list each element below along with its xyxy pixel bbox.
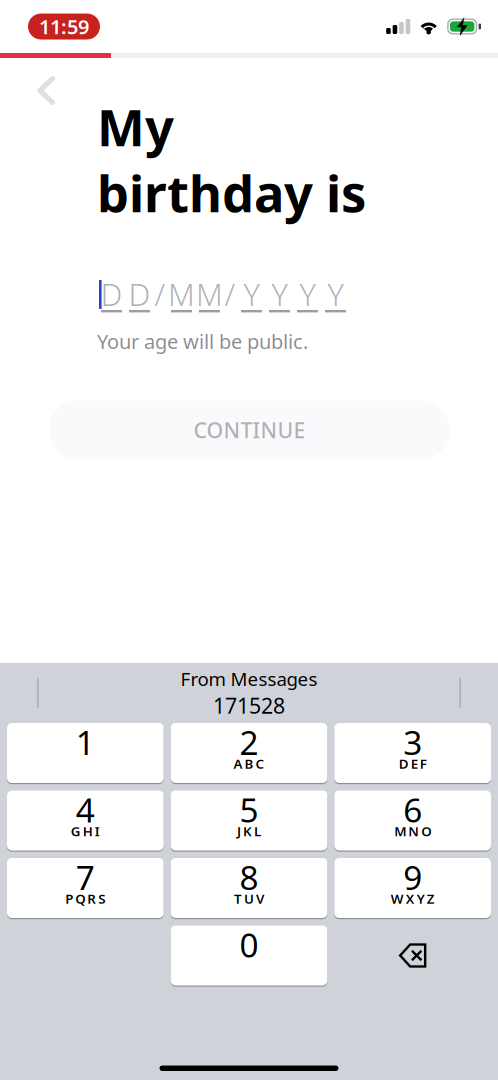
staticText: 6: [403, 787, 422, 832]
staticText: 171528: [213, 691, 285, 719]
staticText: W X Y Z: [391, 890, 435, 907]
staticText: My: [97, 93, 174, 160]
staticText: birthday is: [97, 159, 366, 226]
button[interactable]: 4: [7, 790, 164, 850]
button[interactable]: 0: [171, 925, 327, 985]
button[interactable]: 3: [334, 723, 491, 783]
button[interactable]: From Messages: [164, 662, 333, 723]
staticText: 9: [403, 855, 422, 899]
staticText: 4: [76, 787, 95, 832]
button[interactable]: 2: [171, 723, 327, 783]
staticText: Y: [243, 274, 259, 314]
staticText: /: [154, 274, 165, 314]
staticText: 5: [239, 787, 258, 832]
staticText: T U V: [234, 890, 264, 907]
button[interactable]: 9: [334, 858, 491, 918]
staticText: 7: [76, 855, 95, 899]
staticText: G H I: [71, 822, 100, 840]
staticText: M: [168, 274, 195, 314]
staticText: From Messages: [180, 666, 317, 691]
button[interactable]: 6: [334, 790, 491, 850]
staticText: 3: [403, 720, 422, 764]
staticText: 1: [76, 720, 95, 764]
staticText: Y: [271, 274, 287, 314]
staticText: Y: [299, 274, 315, 314]
staticText: Y: [327, 274, 343, 314]
staticText: /: [224, 274, 235, 314]
button[interactable]: 8: [171, 858, 327, 918]
staticText: M N O: [394, 822, 431, 840]
button[interactable]: 7: [7, 858, 164, 918]
staticText: J K L: [237, 822, 261, 840]
staticText: Your age will be public.: [97, 328, 308, 355]
staticText: 8: [239, 855, 258, 899]
staticText: 0: [239, 922, 258, 967]
staticText: D E F: [399, 755, 427, 772]
button[interactable]: 5: [171, 790, 327, 850]
staticText: A B C: [233, 755, 264, 772]
button[interactable]: Back: [0, 58, 71, 105]
staticText: M: [196, 274, 223, 314]
staticText: CONTINUE: [193, 416, 305, 444]
staticText: D: [100, 274, 122, 314]
staticText: 11:59: [39, 13, 89, 40]
button[interactable]: Delete: [334, 925, 491, 985]
staticText: 2: [239, 720, 258, 764]
button[interactable]: 1: [7, 723, 164, 783]
staticText: D: [128, 274, 150, 314]
button[interactable]: CONTINUE: [49, 401, 450, 460]
staticText: P Q R S: [65, 890, 105, 907]
